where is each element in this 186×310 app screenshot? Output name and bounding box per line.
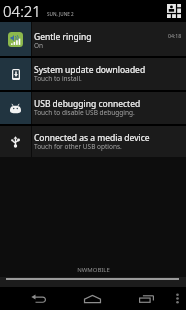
button[interactable]: Recent apps <box>119 287 174 310</box>
staticText: System update downloaded <box>34 64 146 76</box>
button[interactable]: Close notification shade <box>0 277 186 287</box>
staticText: Gentle ringing <box>34 31 92 43</box>
button[interactable]: USB debugging connected <box>0 92 186 124</box>
button[interactable]: Quick settings <box>165 2 183 20</box>
staticText: SUN, JUNE 2 <box>47 11 74 17</box>
button[interactable]: Connected as a media device <box>0 126 186 157</box>
staticText: Touch to install. <box>34 74 82 83</box>
button[interactable]: Back <box>11 287 66 310</box>
staticText: Connected as a media device <box>34 132 150 144</box>
staticText: USB debugging connected <box>34 98 141 110</box>
staticText: Touch for other USB options. <box>34 142 122 151</box>
staticText: Touch to disable USB debugging. <box>34 108 135 117</box>
staticText: NWMOBILE <box>77 266 110 274</box>
button[interactable]: System update downloaded <box>0 58 186 90</box>
button[interactable]: More options <box>168 287 186 310</box>
staticText: 04:21 <box>3 1 41 21</box>
staticText: On <box>34 41 44 50</box>
button[interactable]: Home <box>65 287 119 310</box>
button[interactable]: Gentle ringing <box>0 22 186 56</box>
staticText: 04:18 <box>168 32 182 39</box>
